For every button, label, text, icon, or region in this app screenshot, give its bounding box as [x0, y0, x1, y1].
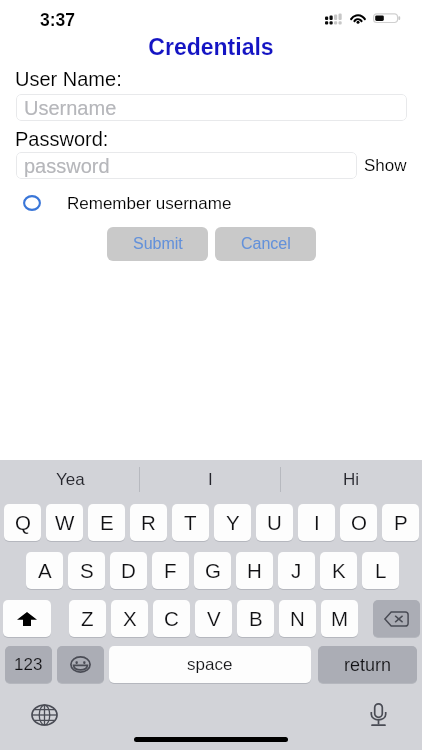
- staticText: G: [205, 559, 221, 582]
- staticText: A: [38, 559, 52, 582]
- button[interactable]: space: [109, 646, 311, 683]
- staticText: I: [314, 511, 320, 534]
- staticText: T: [184, 511, 197, 534]
- staticText: Submit: [133, 235, 183, 253]
- staticText: F: [164, 559, 177, 582]
- button[interactable]: N: [279, 600, 316, 637]
- button[interactable]: G: [194, 552, 231, 589]
- button[interactable]: K: [320, 552, 357, 589]
- button[interactable]: U: [256, 504, 293, 541]
- button[interactable]: A: [26, 552, 63, 589]
- button[interactable]: Change keyboard: [30, 701, 59, 728]
- button[interactable]: Delete: [373, 600, 420, 637]
- button[interactable]: D: [110, 552, 147, 589]
- staticText: C: [164, 607, 179, 630]
- button[interactable]: Y: [214, 504, 251, 541]
- staticText: P: [394, 511, 408, 534]
- button[interactable]: B: [237, 600, 274, 637]
- button[interactable]: R: [130, 504, 167, 541]
- staticText: V: [207, 607, 221, 630]
- button[interactable]: H: [236, 552, 273, 589]
- button[interactable]: I: [140, 460, 281, 498]
- button[interactable]: Dictation: [363, 699, 394, 730]
- staticText: I: [208, 470, 213, 489]
- staticText: User Name:: [15, 68, 122, 90]
- button[interactable]: F: [152, 552, 189, 589]
- staticText: S: [80, 559, 94, 582]
- button[interactable]: Q: [4, 504, 41, 541]
- staticText: Password:: [15, 128, 109, 150]
- button[interactable]: O: [340, 504, 377, 541]
- staticText: Show: [364, 156, 407, 175]
- staticText: Yea: [56, 470, 85, 489]
- button[interactable]: Emoji: [57, 646, 104, 683]
- staticText: W: [55, 511, 75, 534]
- staticText: Hi: [343, 470, 360, 489]
- button[interactable]: Show: [364, 156, 407, 175]
- button[interactable]: Z: [69, 600, 106, 637]
- staticText: U: [267, 511, 282, 534]
- button[interactable]: J: [278, 552, 315, 589]
- staticText: J: [291, 559, 302, 582]
- button[interactable]: Username: [16, 94, 407, 121]
- staticText: M: [331, 607, 349, 630]
- staticText: return: [344, 655, 392, 675]
- staticText: password: [24, 155, 110, 177]
- staticText: O: [351, 511, 367, 534]
- button[interactable]: V: [195, 600, 232, 637]
- staticText: H: [247, 559, 262, 582]
- button[interactable]: return: [318, 646, 417, 683]
- staticText: E: [100, 511, 114, 534]
- staticText: D: [121, 559, 136, 582]
- button[interactable]: Remember username: [16, 190, 248, 216]
- button[interactable]: I: [298, 504, 335, 541]
- staticText: N: [290, 607, 305, 630]
- button[interactable]: X: [111, 600, 148, 637]
- staticText: 123: [14, 655, 43, 674]
- button[interactable]: E: [88, 504, 125, 541]
- button[interactable]: Cancel: [215, 227, 316, 261]
- staticText: Credentials: [0, 34, 422, 60]
- staticText: Remember username: [67, 194, 232, 213]
- button[interactable]: 123: [5, 646, 52, 683]
- staticText: Y: [226, 511, 240, 534]
- button[interactable]: Shift: [3, 600, 51, 637]
- staticText: K: [332, 559, 346, 582]
- staticText: B: [249, 607, 263, 630]
- staticText: 3:37: [40, 10, 76, 30]
- button[interactable]: Hi: [281, 460, 422, 498]
- button[interactable]: W: [46, 504, 83, 541]
- staticText: L: [375, 559, 387, 582]
- button[interactable]: C: [153, 600, 190, 637]
- button[interactable]: S: [68, 552, 105, 589]
- staticText: X: [123, 607, 137, 630]
- button[interactable]: password: [16, 152, 357, 179]
- button[interactable]: T: [172, 504, 209, 541]
- staticText: Q: [15, 511, 31, 534]
- button[interactable]: Submit: [107, 227, 208, 261]
- button[interactable]: L: [362, 552, 399, 589]
- staticText: Z: [81, 607, 94, 630]
- button[interactable]: P: [382, 504, 419, 541]
- button[interactable]: Yea: [0, 460, 140, 498]
- staticText: R: [141, 511, 156, 534]
- staticText: space: [187, 655, 233, 674]
- staticText: Username: [24, 97, 117, 119]
- staticText: Cancel: [241, 235, 291, 253]
- button[interactable]: M: [321, 600, 358, 637]
